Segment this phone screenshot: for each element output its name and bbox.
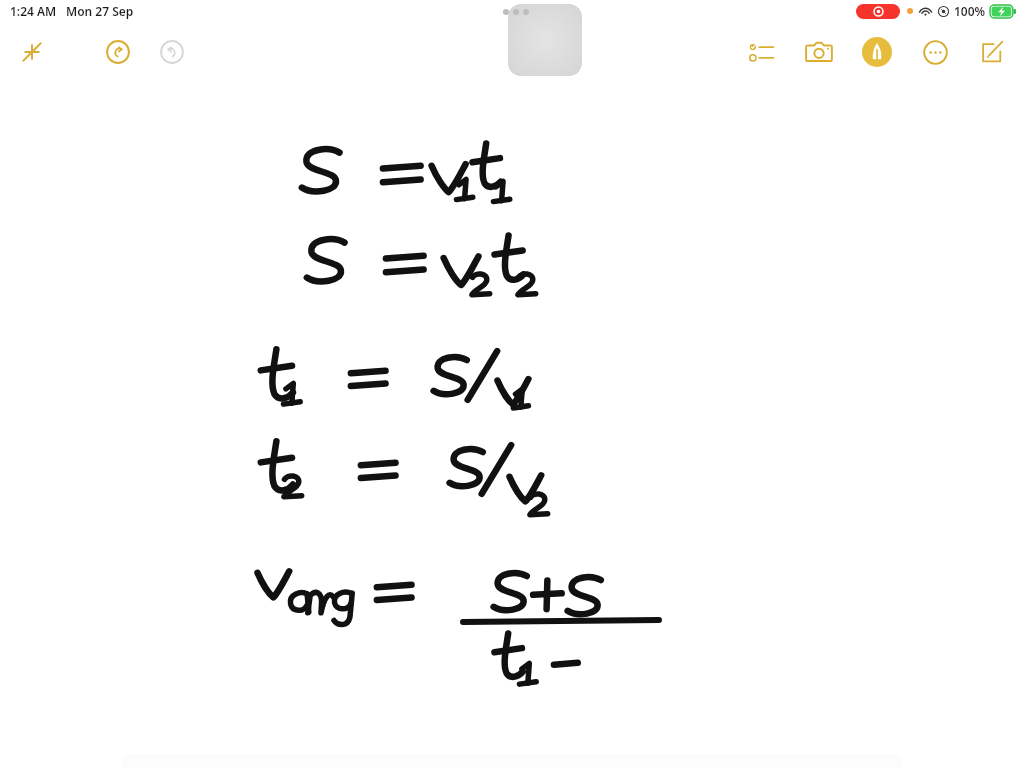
button[interactable]: Screen recording [856, 4, 900, 19]
staticText: 1:24 AM [10, 3, 57, 19]
button[interactable]: Undo [98, 32, 138, 72]
button[interactable]: App window preview [508, 4, 582, 76]
staticText: Mon 27 Sep [66, 3, 134, 19]
button[interactable]: Insert photo [798, 31, 840, 73]
button[interactable]: Collapse [12, 32, 52, 72]
staticText: 100% [954, 3, 986, 19]
button[interactable]: New note [972, 31, 1014, 73]
button[interactable]: Markup pen [856, 31, 898, 73]
button[interactable]: More options [914, 31, 956, 73]
button[interactable]: Redo [152, 32, 192, 72]
button[interactable] [0, 82, 1024, 768]
button[interactable]: Checklist [740, 31, 782, 73]
